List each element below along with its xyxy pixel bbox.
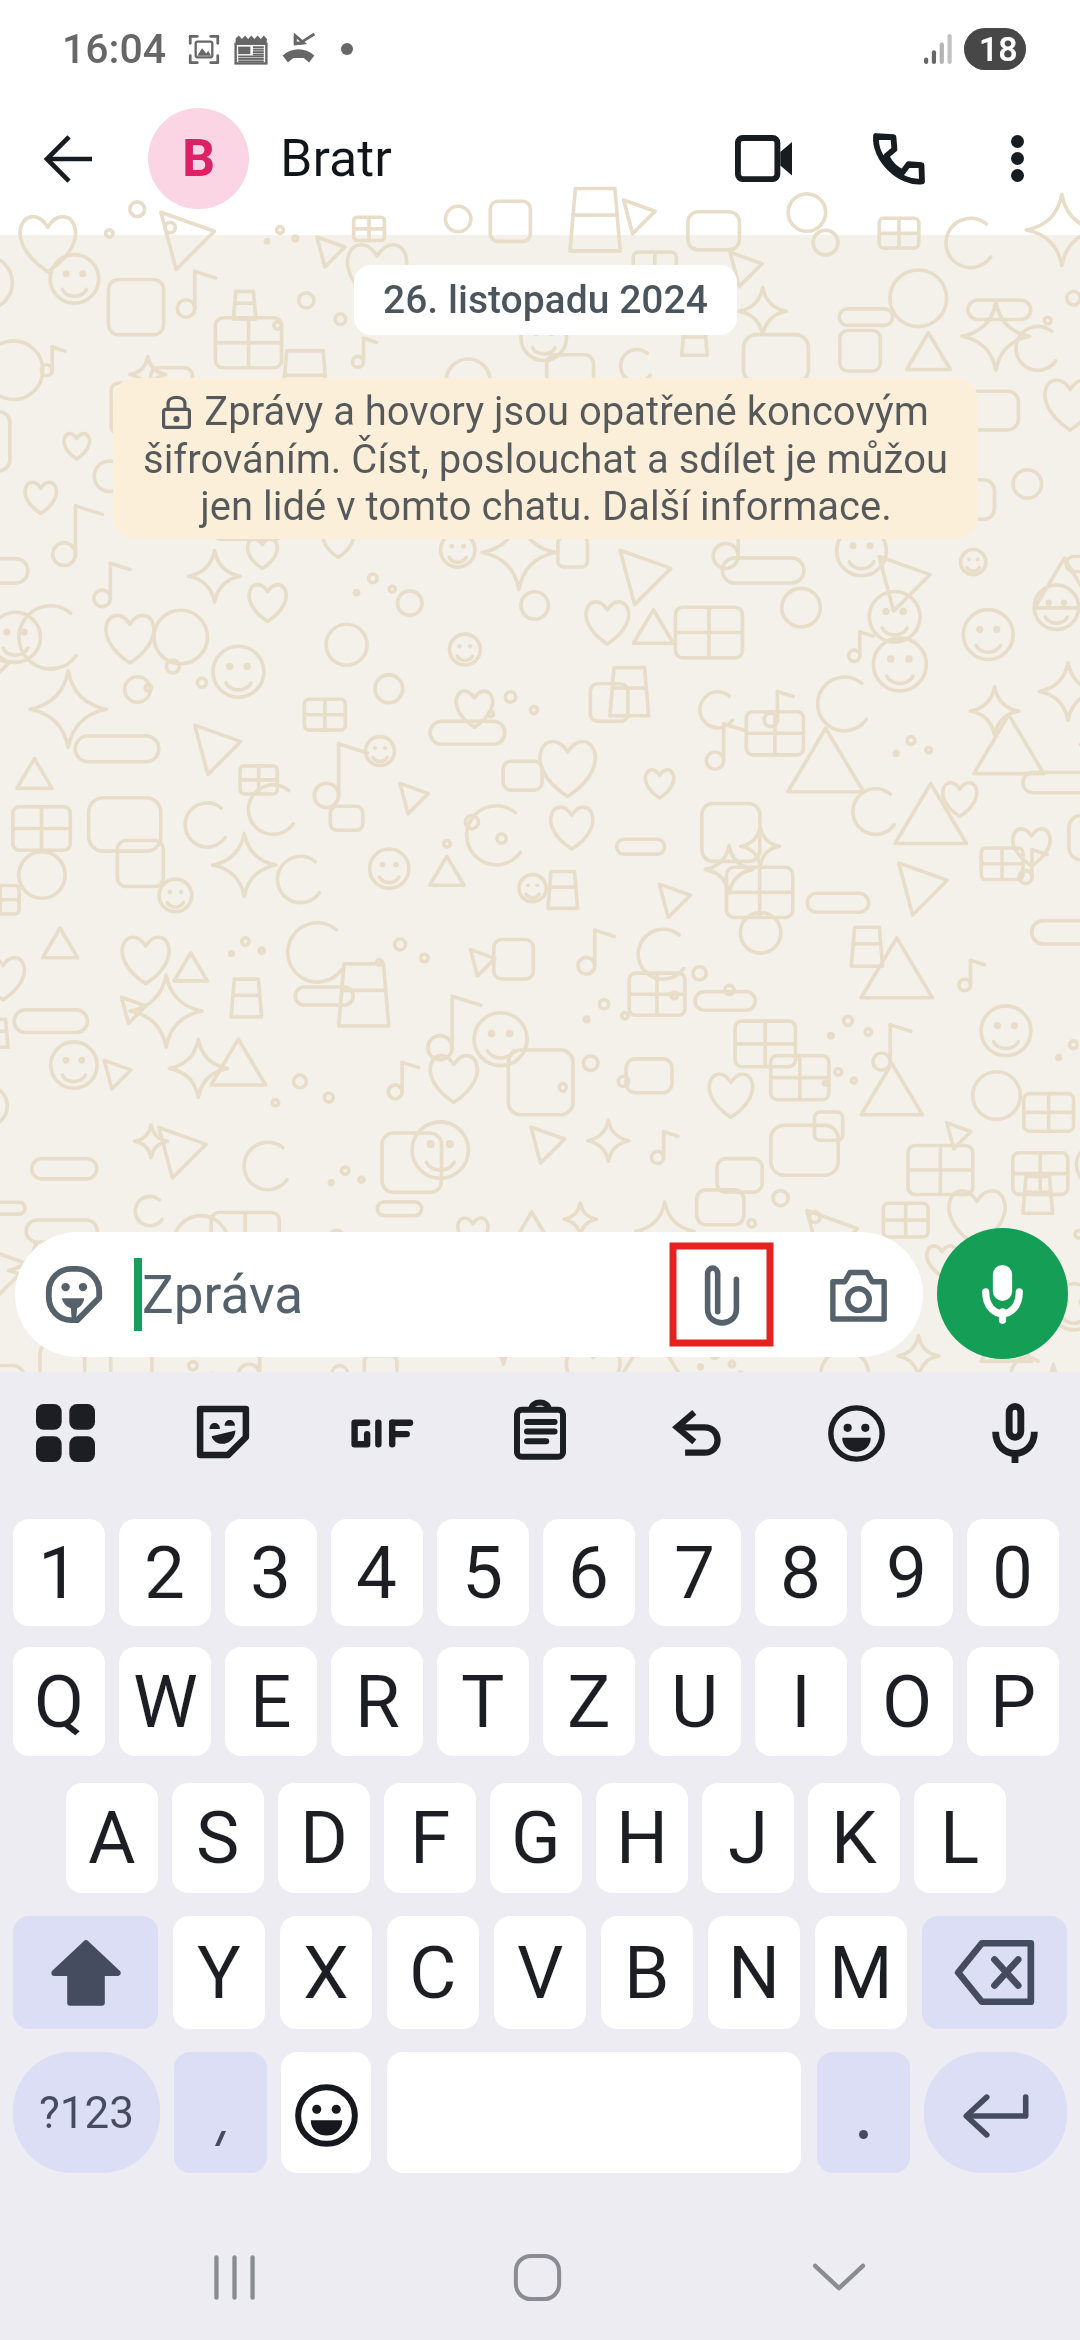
button[interactable]: Y [173, 1916, 265, 2029]
button[interactable]: Sticker [15, 1232, 118, 1357]
button[interactable]: More options [965, 106, 1070, 211]
staticText: O [882, 1659, 933, 1745]
button[interactable]: 8 [755, 1519, 847, 1626]
staticText: D [300, 1795, 348, 1881]
button[interactable]: O [861, 1647, 953, 1756]
button[interactable]: Emoji [281, 2052, 371, 2173]
staticText: R [355, 1659, 400, 1745]
button[interactable]: C [387, 1916, 479, 2029]
button[interactable]: N [708, 1916, 800, 2029]
staticText: 0 [992, 1530, 1034, 1616]
button[interactable]: Apps [1, 1372, 129, 1500]
button[interactable]: 1 [13, 1519, 105, 1626]
button[interactable]: Voice message [937, 1228, 1068, 1359]
staticText: šifrováním. Číst, poslouchat a sdílet je… [143, 436, 948, 483]
staticText: C [409, 1930, 457, 2016]
button[interactable]: 5 [437, 1519, 529, 1626]
staticText: P [990, 1659, 1037, 1745]
button[interactable]: Call [846, 106, 951, 211]
button[interactable]: Shift [13, 1916, 158, 2029]
button[interactable]: F [384, 1783, 476, 1893]
button[interactable]: 6 [543, 1519, 635, 1626]
button[interactable]: K [808, 1783, 900, 1893]
staticText: J [728, 1795, 769, 1881]
button[interactable]: Enter [924, 2052, 1067, 2173]
staticText: K [831, 1795, 877, 1881]
button[interactable]: G [490, 1783, 582, 1893]
button[interactable]: B [601, 1916, 693, 2029]
staticText: 3 [250, 1530, 292, 1616]
button[interactable]: 4 [331, 1519, 423, 1626]
button[interactable]: B [148, 108, 249, 209]
staticText: E [250, 1659, 292, 1745]
staticText: 9 [886, 1530, 928, 1616]
button[interactable]: V [494, 1916, 586, 2029]
button[interactable]: J [702, 1783, 794, 1893]
button[interactable]: 0 [967, 1519, 1059, 1626]
button[interactable]: Attach [673, 1246, 770, 1343]
staticText: H [616, 1795, 669, 1881]
staticText: 5 [462, 1530, 504, 1616]
button[interactable]: T [437, 1647, 529, 1756]
staticText: N [728, 1930, 781, 2016]
button[interactable]: Emoji [792, 1372, 920, 1500]
staticText: M [829, 1930, 893, 2016]
button[interactable]: Back [17, 107, 120, 210]
staticText: 26. listopadu 2024 [383, 277, 708, 323]
staticText: Zprávy a hovory jsou opatřené koncovým [204, 388, 929, 435]
button[interactable]: W [119, 1647, 211, 1756]
staticText: 4 [356, 1530, 398, 1616]
staticText: B [182, 128, 216, 189]
button[interactable]: Hide keyboard [792, 2233, 886, 2321]
staticText: U [671, 1659, 719, 1745]
button[interactable]: A [66, 1783, 158, 1893]
staticText: ?123 [39, 2087, 134, 2139]
staticText: 2 [144, 1530, 186, 1616]
staticText: L [940, 1795, 980, 1881]
button[interactable]: Recents [187, 2233, 281, 2321]
button[interactable]: X [280, 1916, 372, 2029]
button[interactable]: D [278, 1783, 370, 1893]
button[interactable]: Home [490, 2233, 584, 2321]
button[interactable]: 7 [649, 1519, 741, 1626]
staticText: 8 [780, 1530, 822, 1616]
button[interactable]: H [596, 1783, 688, 1893]
staticText: S [196, 1795, 240, 1881]
button[interactable]: Comma [174, 2052, 267, 2173]
button[interactable]: Period [817, 2052, 910, 2173]
button[interactable]: GIF [317, 1372, 445, 1500]
button[interactable]: Q [13, 1647, 105, 1756]
button[interactable]: Bratr [280, 128, 392, 189]
button[interactable]: P [967, 1647, 1059, 1756]
button[interactable]: 9 [861, 1519, 953, 1626]
button[interactable]: M [815, 1916, 907, 2029]
button[interactable]: Backspace [922, 1916, 1067, 2029]
staticText: B [624, 1930, 670, 2016]
button[interactable]: Undo [634, 1372, 762, 1500]
button[interactable]: R [331, 1647, 423, 1756]
button[interactable]: I [755, 1647, 847, 1756]
button[interactable]: S [172, 1783, 264, 1893]
staticText: G [511, 1795, 561, 1881]
button[interactable]: 26. listopadu 2024 [354, 265, 737, 335]
button[interactable]: Voice input [951, 1372, 1079, 1500]
button[interactable]: U [649, 1647, 741, 1756]
staticText: 7 [674, 1530, 716, 1616]
button[interactable]: Symbols [13, 2052, 160, 2173]
button[interactable]: L [914, 1783, 1006, 1893]
staticText: Z [567, 1659, 611, 1745]
staticText: I [791, 1659, 811, 1745]
staticText: 18 [979, 29, 1018, 69]
button[interactable]: Camera [814, 1246, 902, 1344]
button[interactable]: Z [543, 1647, 635, 1756]
button[interactable]: Video call [711, 106, 816, 211]
button[interactable]: 2 [119, 1519, 211, 1626]
button[interactable]: Clipboard [476, 1372, 604, 1500]
button[interactable]: 3 [225, 1519, 317, 1626]
button[interactable]: E [225, 1647, 317, 1756]
staticText: X [303, 1930, 349, 2016]
staticText: 6 [568, 1530, 610, 1616]
button[interactable]: Zprávy a hovory jsou opatřené koncovým [113, 378, 978, 539]
button[interactable]: Sticker [159, 1372, 287, 1500]
